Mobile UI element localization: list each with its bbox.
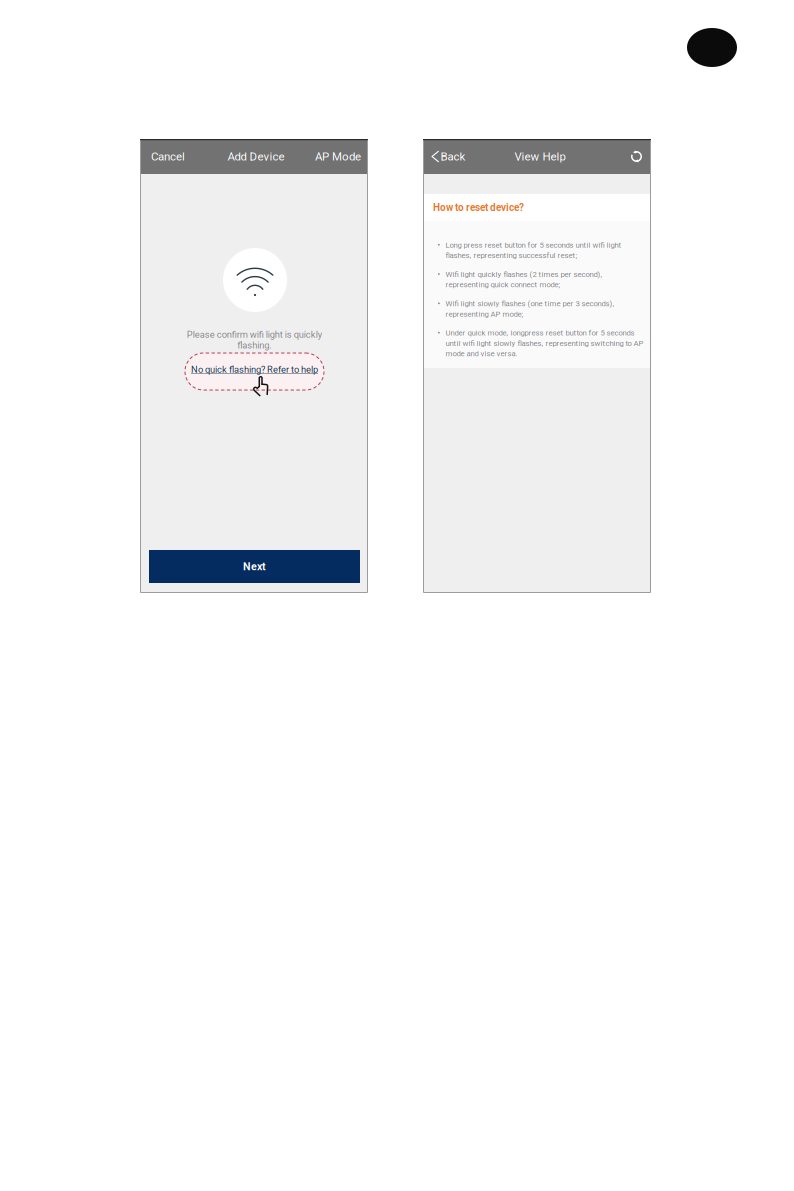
button[interactable]: AP Mode — [315, 141, 368, 172]
button[interactable]: No quick flashing? Refer to help — [185, 353, 324, 390]
staticText: How to reset device? — [433, 202, 524, 213]
staticText: No quick flashing? Refer to help — [191, 364, 318, 375]
button[interactable]: Refresh — [630, 141, 651, 172]
button[interactable]: Next — [149, 550, 360, 583]
staticText: Wifi light quickly flashes (2 times per … — [445, 270, 602, 279]
staticText: Wifi light slowly flashes (one time per … — [445, 299, 614, 308]
button[interactable]: Cancel — [140, 141, 185, 172]
staticText: Next — [243, 560, 266, 573]
staticText: Under quick mode, longpress reset button… — [445, 328, 634, 337]
staticText: representing quick connect mode; — [445, 280, 560, 289]
staticText: Cancel — [151, 150, 185, 163]
staticText: Please confirm wifi light is quickly fla… — [186, 329, 321, 351]
staticText: representing AP mode; — [445, 309, 523, 318]
staticText: Add Device — [227, 150, 284, 163]
staticText: View Help — [514, 150, 565, 163]
staticText: flashes, representing successful reset; — [445, 251, 577, 260]
staticText: until wifi light slowly flashes, represe… — [445, 339, 643, 348]
staticText: Back — [440, 150, 465, 163]
staticText: Long press reset button for 5 seconds un… — [445, 240, 621, 250]
staticText: mode and vise versa. — [445, 349, 517, 358]
button[interactable]: Back — [423, 141, 465, 172]
staticText: AP Mode — [315, 150, 361, 163]
